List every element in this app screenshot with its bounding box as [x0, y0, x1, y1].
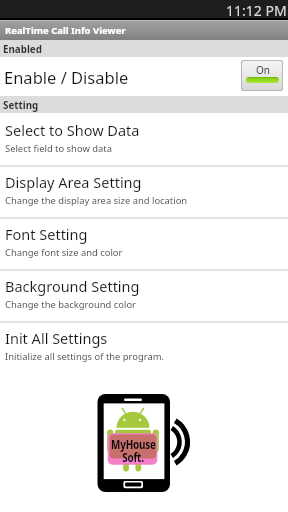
staticText: 11:12 PM — [226, 1, 287, 20]
staticText: Init All Settings — [5, 328, 108, 348]
staticText: Change the display area size and locatio… — [5, 194, 188, 207]
staticText: Soft. — [122, 450, 144, 466]
staticText: Enabled — [3, 43, 42, 56]
staticText: Background Setting — [5, 276, 140, 296]
button[interactable]: Enable / Disable — [0, 57, 288, 96]
staticText: Font Setting — [5, 224, 88, 244]
staticText: RealTime Call Info Viewer — [5, 24, 126, 37]
staticText: Change font size and color — [5, 246, 123, 259]
button[interactable]: Select to Show Data — [0, 113, 288, 165]
staticText: Display Area Setting — [5, 172, 142, 192]
staticText: Select field to show data — [5, 142, 112, 155]
staticText: Initialize all settings of the program. — [5, 350, 165, 363]
staticText: Change the background color — [5, 298, 136, 311]
button[interactable]: Init All Settings — [0, 321, 288, 373]
staticText: Select to Show Data — [5, 120, 140, 140]
staticText: Enable / Disable — [4, 66, 129, 88]
button[interactable]: Display Area Setting — [0, 165, 288, 217]
button[interactable]: Background Setting — [0, 269, 288, 321]
staticText: MyHouse — [111, 437, 156, 453]
other: MyHouse Soft logo — [95, 394, 195, 498]
button[interactable]: Enable toggle, On — [241, 60, 283, 91]
button[interactable]: Font Setting — [0, 217, 288, 269]
staticText: Setting — [3, 99, 39, 112]
staticText: On — [256, 63, 270, 77]
